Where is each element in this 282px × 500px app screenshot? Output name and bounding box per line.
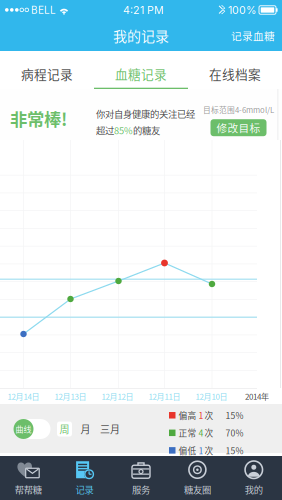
staticText: 100% (228, 3, 256, 16)
staticText: 修改目标 (216, 120, 260, 135)
staticText: 15% (225, 409, 243, 421)
button[interactable]: 记录血糖 (224, 21, 282, 50)
staticText: 曲线 (15, 423, 31, 435)
staticText: 血糖记录 (115, 65, 167, 83)
button[interactable]: 记录 (56, 456, 113, 500)
staticText: 次 (204, 426, 213, 439)
staticText: 周 (59, 422, 69, 436)
staticText: 15% (225, 444, 243, 457)
staticText: 偏高 (178, 409, 196, 421)
button[interactable]: 服务 (113, 456, 169, 500)
staticText: 超过 (96, 123, 114, 137)
staticText: 4:21 PM (123, 3, 164, 16)
staticText: 12月11日 (148, 390, 180, 402)
staticText: 正常 (178, 426, 196, 439)
button[interactable]: 周 (57, 421, 72, 436)
staticText: 85% (114, 123, 133, 137)
button[interactable]: 帮帮糖 (0, 456, 56, 500)
staticText: 12月14日 (7, 390, 39, 402)
staticText: BELL (31, 4, 56, 16)
staticText: 三月 (100, 422, 120, 436)
button[interactable]: 血糖记录 (94, 51, 188, 89)
staticText: 服务 (132, 483, 150, 496)
staticText: 月 (80, 422, 90, 436)
staticText: 在线档案 (209, 65, 261, 83)
staticText: 帮帮糖 (15, 483, 42, 496)
staticText: 1 (198, 444, 203, 457)
staticText: 次 (204, 444, 213, 457)
staticText: 次 (204, 409, 213, 421)
staticText: 的糖友 (133, 123, 160, 137)
staticText: 偏低 (178, 444, 196, 457)
staticText: 12月12日 (101, 390, 133, 402)
button[interactable]: 曲线 (13, 419, 50, 439)
staticText: 12月13日 (54, 390, 86, 402)
staticText: 记录 (76, 483, 94, 496)
button[interactable]: 糖友圈 (169, 456, 226, 500)
staticText: 1 (198, 409, 203, 421)
staticText: 目标范围4-6mmol/L (203, 104, 274, 115)
staticText: 糖友圈 (184, 483, 211, 496)
staticText: 2014年 (245, 390, 269, 402)
staticText: 你对自身健康的关注已经 (96, 107, 195, 120)
staticText: 我的 (245, 483, 263, 496)
staticText: 非常棒! (10, 106, 67, 131)
button[interactable]: 修改目标 (210, 119, 266, 136)
button[interactable]: 病程记录 (0, 51, 94, 89)
button[interactable]: 我的 (226, 456, 282, 500)
button[interactable]: 在线档案 (188, 51, 282, 89)
staticText: 记录血糖 (231, 28, 275, 43)
staticText: 70% (225, 426, 243, 439)
staticText: 12月10日 (195, 390, 227, 402)
button[interactable]: 三月 (99, 421, 121, 436)
staticText: 我的记录 (113, 25, 169, 46)
staticText: 4 (198, 426, 203, 439)
staticText: 病程记录 (21, 65, 73, 83)
button[interactable]: 月 (78, 421, 93, 436)
